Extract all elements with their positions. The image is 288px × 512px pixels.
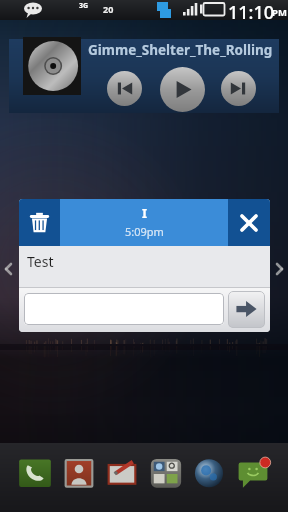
staticText: PM <box>272 6 287 19</box>
staticText: 20 <box>103 3 114 15</box>
button[interactable]: Album art <box>23 37 81 95</box>
button[interactable]: Next <box>221 71 256 106</box>
button[interactable]: Send <box>228 291 265 328</box>
button[interactable]: Messaging <box>104 456 140 492</box>
staticText: Gimme_Shelter_The_Rolling <box>88 41 273 59</box>
button[interactable]: Album art <box>9 39 279 113</box>
staticText: I <box>142 204 148 222</box>
staticText: Test <box>27 252 54 271</box>
button[interactable]: Apps <box>148 456 184 492</box>
button[interactable]: Play <box>160 67 205 112</box>
button[interactable]: Contacts <box>61 456 97 492</box>
button[interactable]: Messages <box>235 456 271 492</box>
button[interactable]: Message input <box>24 293 224 325</box>
staticText: 3G <box>79 1 89 11</box>
button[interactable]: Browser <box>191 456 227 492</box>
button[interactable]: Phone <box>17 456 53 492</box>
button[interactable]: Delete <box>19 199 60 246</box>
staticText: 5:09pm <box>125 224 164 239</box>
button[interactable]: Previous <box>107 71 142 106</box>
staticText: 11:10 <box>228 0 275 20</box>
button[interactable]: Close <box>228 199 270 246</box>
